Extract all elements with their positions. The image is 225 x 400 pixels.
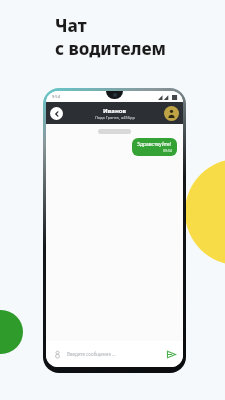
button[interactable]: Прикрепить [51,348,63,360]
button[interactable]: Отправить [164,347,178,361]
button[interactable]: Профиль водителя [164,106,179,121]
staticText: Введите сообщение ... [67,351,116,357]
button[interactable]: Здравствуйте! [132,138,177,156]
staticText: 09:54 [163,148,172,153]
staticText: 9:54 [52,94,60,99]
staticText: Чат [55,14,87,37]
button[interactable]: Назад [50,107,63,120]
staticText: Иванов [103,107,127,115]
staticText: Лада Гранта, a456pp [95,115,135,120]
staticText: Здравствуйте! [137,141,172,148]
staticText: с водителем [55,37,166,60]
